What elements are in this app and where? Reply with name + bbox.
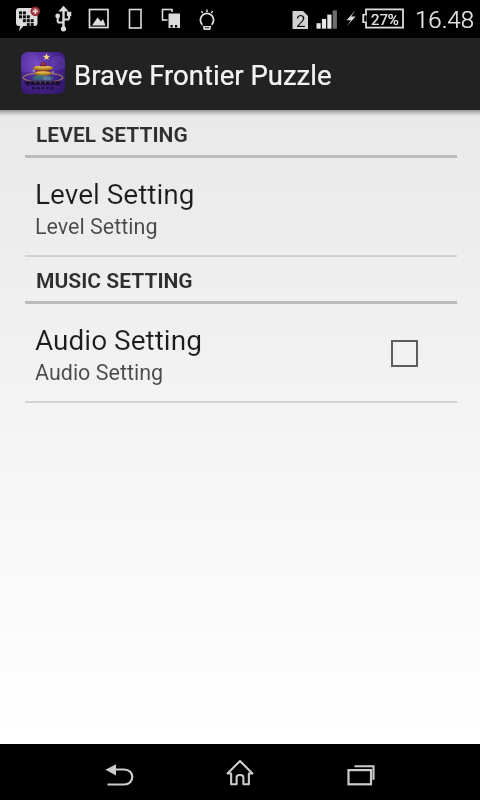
button[interactable]: Audio Setting xyxy=(0,304,480,401)
staticText: 2 xyxy=(296,11,306,31)
staticText: Audio Setting xyxy=(35,360,164,385)
staticText: 16.48 xyxy=(415,6,474,34)
button[interactable]: Back xyxy=(92,755,148,795)
staticText: MUSIC SETTING xyxy=(36,269,193,294)
staticText: LEVEL SETTING xyxy=(36,123,188,148)
button[interactable]: Recent apps xyxy=(334,755,390,795)
staticText: Level Setting xyxy=(35,178,195,211)
button[interactable]: Brave Frontier Puzzle xyxy=(12,38,342,110)
staticText: Level Setting xyxy=(35,214,158,239)
staticText: Audio Setting xyxy=(35,324,202,357)
staticText: 27% xyxy=(371,11,399,29)
button[interactable]: Home xyxy=(212,752,268,792)
staticText: Brave Frontier Puzzle xyxy=(74,59,332,91)
button[interactable]: Audio Setting checkbox xyxy=(392,341,417,366)
button[interactable]: Level Setting xyxy=(0,158,480,255)
